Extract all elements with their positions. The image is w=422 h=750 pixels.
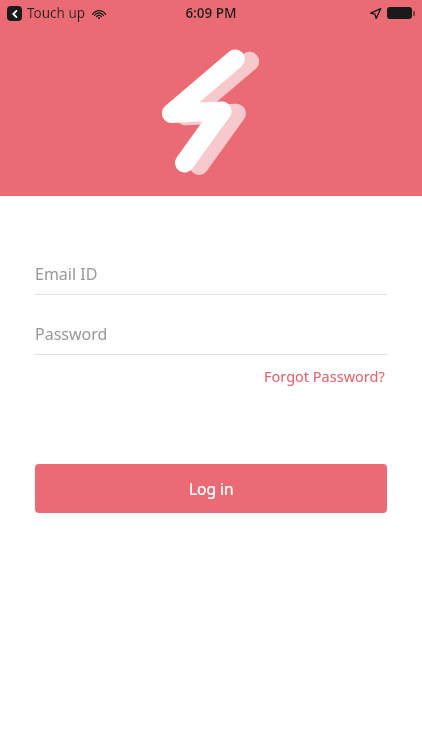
staticText: Touch up xyxy=(27,4,86,22)
button[interactable]: Forgot Password? xyxy=(262,364,387,388)
other: App logo xyxy=(156,52,266,170)
staticText: Password xyxy=(35,323,108,345)
staticText: Forgot Password? xyxy=(264,366,385,386)
button[interactable]: Email ID xyxy=(35,261,387,295)
staticText: Log in xyxy=(189,478,234,499)
staticText: 6:09 PM xyxy=(185,4,237,22)
button[interactable]: Password xyxy=(35,321,387,355)
staticText: Email ID xyxy=(35,263,98,285)
button[interactable]: Log in xyxy=(35,464,387,513)
